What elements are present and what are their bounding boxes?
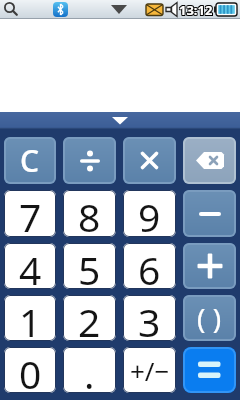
button[interactable]: 3 (123, 295, 176, 341)
button[interactable]: 1 (4, 295, 56, 341)
staticText: 6 (138, 243, 161, 289)
button[interactable]: . (63, 347, 116, 393)
staticText: ( ) (197, 299, 222, 337)
staticText: 5 (78, 243, 101, 289)
staticText: 13:12 (179, 2, 213, 19)
button[interactable] (123, 137, 176, 184)
button[interactable]: 0 (4, 347, 56, 393)
staticText: . (84, 347, 95, 393)
button[interactable] (183, 137, 236, 184)
button[interactable] (63, 137, 116, 184)
staticText: 13:12 (179, 1, 213, 19)
staticText: C (20, 140, 40, 181)
staticText: 3 (138, 295, 161, 341)
button[interactable]: C (4, 137, 56, 184)
staticText: 13:12 (178, 2, 212, 19)
button[interactable] (183, 243, 236, 289)
button[interactable]: +/− (123, 347, 176, 393)
button[interactable]: 5 (63, 243, 116, 289)
button[interactable]: 8 (63, 190, 116, 237)
button[interactable] (183, 190, 236, 237)
button[interactable] (183, 347, 236, 393)
button[interactable]: 2 (63, 295, 116, 341)
staticText: 2 (78, 295, 101, 341)
staticText: 0 (19, 347, 42, 393)
button[interactable]: 7 (4, 190, 56, 237)
button[interactable]: 6 (123, 243, 176, 289)
staticText: 13:12 (178, 0, 212, 18)
staticText: +/− (130, 353, 170, 388)
staticText: 9 (138, 190, 161, 237)
button[interactable]: 4 (4, 243, 56, 289)
staticText: 13:12 (178, 1, 212, 19)
staticText: 13:12 (180, 0, 214, 18)
staticText: 7 (19, 190, 42, 237)
staticText: 8 (78, 190, 101, 237)
staticText: 13:12 (179, 0, 213, 18)
button[interactable]: ( ) (183, 295, 236, 341)
staticText: 13:12 (180, 1, 214, 19)
button[interactable]: 9 (123, 190, 176, 237)
staticText: 4 (19, 243, 42, 289)
staticText: 13:12 (180, 2, 214, 19)
staticText: 1 (19, 295, 42, 341)
